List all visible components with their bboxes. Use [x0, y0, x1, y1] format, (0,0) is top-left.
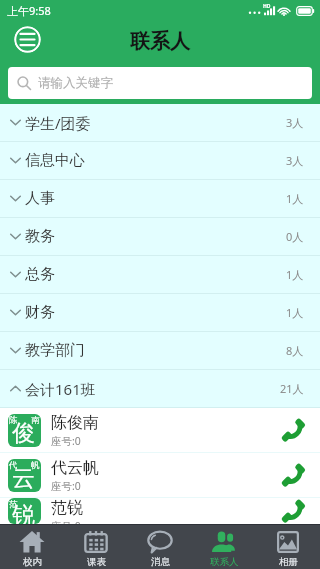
button[interactable]: 拨打电话	[279, 498, 307, 524]
staticText: 教务	[25, 227, 55, 246]
staticText: 总务	[25, 265, 55, 284]
button[interactable]: 俊	[0, 408, 320, 452]
staticText: 消息	[151, 556, 170, 568]
button[interactable]: 信息中心	[0, 142, 320, 179]
staticText: 座号:0	[51, 479, 81, 493]
button[interactable]: 总务	[0, 256, 320, 293]
staticText: 联系人	[210, 556, 239, 568]
staticText: 联系人	[130, 29, 190, 54]
staticText: 3人	[286, 153, 304, 168]
staticText: 21人	[280, 381, 304, 396]
staticText: 南	[31, 415, 40, 426]
staticText: 锐	[12, 501, 35, 524]
staticText: 1人	[286, 267, 304, 282]
staticText: 学生/团委	[25, 113, 91, 133]
staticText: 陈	[9, 415, 18, 426]
button[interactable]: 人事	[0, 180, 320, 217]
staticText: 请输入关键字	[38, 75, 113, 91]
button[interactable]: 联系人	[192, 524, 256, 568]
staticText: 座号:0	[51, 519, 81, 524]
staticText: 云	[12, 464, 35, 492]
staticText: 会计161班	[25, 379, 96, 399]
staticText: 座号:0	[51, 434, 81, 448]
button[interactable]: 财务	[0, 294, 320, 331]
button[interactable]: 教务	[0, 218, 320, 255]
staticText: 陈俊南	[51, 413, 99, 433]
staticText: 相册	[279, 556, 298, 568]
button[interactable]: 请输入关键字	[8, 67, 312, 99]
staticText: 教学部门	[25, 341, 85, 360]
staticText: 8人	[286, 343, 304, 358]
staticText: 3人	[286, 115, 304, 130]
button[interactable]: 学生/团委	[0, 104, 320, 141]
staticText: 俊	[12, 419, 35, 447]
staticText: 人事	[25, 189, 55, 208]
button[interactable]: 课表	[64, 524, 128, 568]
button[interactable]: 锐	[0, 498, 320, 524]
button[interactable]: 云	[0, 453, 320, 497]
staticText: 0人	[286, 229, 304, 244]
staticText: 帆	[31, 460, 40, 471]
staticText: HD	[263, 3, 271, 10]
staticText: 信息中心	[25, 151, 85, 170]
button[interactable]: 会计161班	[0, 370, 320, 407]
button[interactable]: 校内	[0, 524, 64, 568]
staticText: 课表	[87, 556, 106, 568]
staticText: 范	[9, 499, 18, 510]
staticText: 1人	[286, 191, 304, 206]
button[interactable]: 消息	[128, 524, 192, 568]
staticText: 财务	[25, 303, 55, 322]
button[interactable]: 教学部门	[0, 332, 320, 369]
staticText: 校内	[23, 556, 42, 568]
button[interactable]: 拨打电话	[279, 416, 307, 444]
staticText: 代	[9, 460, 18, 471]
staticText: 代云帆	[51, 458, 99, 478]
button[interactable]: 菜单	[14, 26, 41, 53]
staticText: 1人	[286, 305, 304, 320]
button[interactable]: 相册	[256, 524, 320, 568]
staticText: 上午9:58	[7, 3, 51, 18]
staticText: 范锐	[51, 498, 83, 518]
button[interactable]: 拨打电话	[279, 461, 307, 489]
